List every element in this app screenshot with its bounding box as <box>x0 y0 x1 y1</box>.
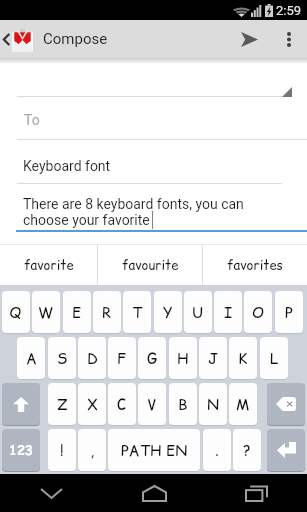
staticText: D <box>87 348 98 369</box>
button[interactable]: , <box>78 429 106 471</box>
staticText: To <box>24 112 40 128</box>
staticText: ! <box>60 440 64 461</box>
staticText: B <box>178 394 188 415</box>
button[interactable]: Backspace <box>267 383 305 425</box>
button[interactable]: O <box>244 291 272 333</box>
button[interactable]: D <box>78 337 106 379</box>
staticText: 2:59 <box>276 3 302 18</box>
button[interactable]: L <box>260 337 288 379</box>
staticText: F <box>117 348 127 369</box>
button[interactable]: S <box>48 337 76 379</box>
button[interactable]: Q <box>2 291 30 333</box>
staticText: R <box>102 302 112 323</box>
staticText: 123 <box>9 441 33 459</box>
button[interactable]: Recent apps <box>205 474 307 512</box>
staticText: N <box>207 394 219 415</box>
staticText: Z <box>57 394 68 415</box>
staticText: V <box>147 394 157 415</box>
staticText: P <box>285 302 293 323</box>
button[interactable]: favourite <box>97 245 203 285</box>
button[interactable]: V <box>138 383 166 425</box>
staticText: A <box>26 348 37 369</box>
staticText: L <box>270 348 279 369</box>
staticText: Keyboard font <box>23 158 111 174</box>
staticText: H <box>177 348 189 369</box>
staticText: favourite <box>122 256 179 274</box>
staticText: favorites <box>227 256 283 274</box>
staticText: ? <box>243 440 251 461</box>
staticText: Y <box>163 302 173 323</box>
button[interactable]: U <box>184 291 212 333</box>
button[interactable]: B <box>169 383 197 425</box>
button[interactable]: C <box>108 383 136 425</box>
button[interactable]: Y <box>154 291 182 333</box>
staticText: I <box>224 302 233 323</box>
button[interactable]: G <box>138 337 166 379</box>
button[interactable]: ? <box>233 429 261 471</box>
button[interactable]: PATH EN <box>108 429 200 471</box>
button[interactable]: Symbols <box>2 429 40 471</box>
button[interactable]: H <box>169 337 197 379</box>
staticText: W <box>38 302 54 323</box>
button[interactable]: E <box>63 291 91 333</box>
staticText: favorite <box>24 256 74 274</box>
staticText: E <box>72 302 82 323</box>
staticText: G <box>147 348 158 369</box>
button[interactable]: K <box>229 337 257 379</box>
button[interactable]: N <box>199 383 227 425</box>
button[interactable]: More options <box>271 20 307 58</box>
staticText: C <box>117 394 127 415</box>
staticText: T <box>132 302 143 323</box>
staticText: O <box>252 302 264 323</box>
button[interactable]: Send <box>227 20 271 58</box>
button[interactable]: W <box>32 291 60 333</box>
button[interactable]: ! <box>48 429 76 471</box>
staticText: Q <box>9 302 23 323</box>
button[interactable]: J <box>199 337 227 379</box>
staticText: S <box>57 348 68 369</box>
button[interactable]: T <box>123 291 151 333</box>
button[interactable]: X <box>78 383 106 425</box>
button[interactable]: Enter <box>267 429 305 471</box>
button[interactable]: F <box>108 337 136 379</box>
staticText: . <box>215 440 219 461</box>
button[interactable]: Z <box>48 383 76 425</box>
staticText: U <box>192 302 204 323</box>
staticText: J <box>208 348 218 369</box>
button[interactable]: A <box>17 337 45 379</box>
staticText: PATH EN <box>121 440 188 461</box>
button[interactable]: favorite <box>0 245 97 285</box>
staticText: X <box>87 394 98 415</box>
staticText: M <box>236 394 250 415</box>
button[interactable]: Hide keyboard <box>0 474 103 512</box>
button[interactable]: Home <box>103 474 205 512</box>
button[interactable]: P <box>275 291 303 333</box>
button[interactable]: Shift <box>2 383 40 425</box>
button[interactable]: . <box>203 429 231 471</box>
button[interactable]: favorites <box>202 245 307 285</box>
button[interactable]: M <box>229 383 257 425</box>
staticText: There are 8 keyboard fonts, you can choo… <box>23 196 244 228</box>
button[interactable]: I <box>214 291 242 333</box>
button[interactable]: R <box>93 291 121 333</box>
staticText: , <box>90 440 95 461</box>
staticText: K <box>238 348 248 369</box>
button[interactable]: Navigate up <box>0 20 34 58</box>
staticText: Compose <box>43 30 108 48</box>
